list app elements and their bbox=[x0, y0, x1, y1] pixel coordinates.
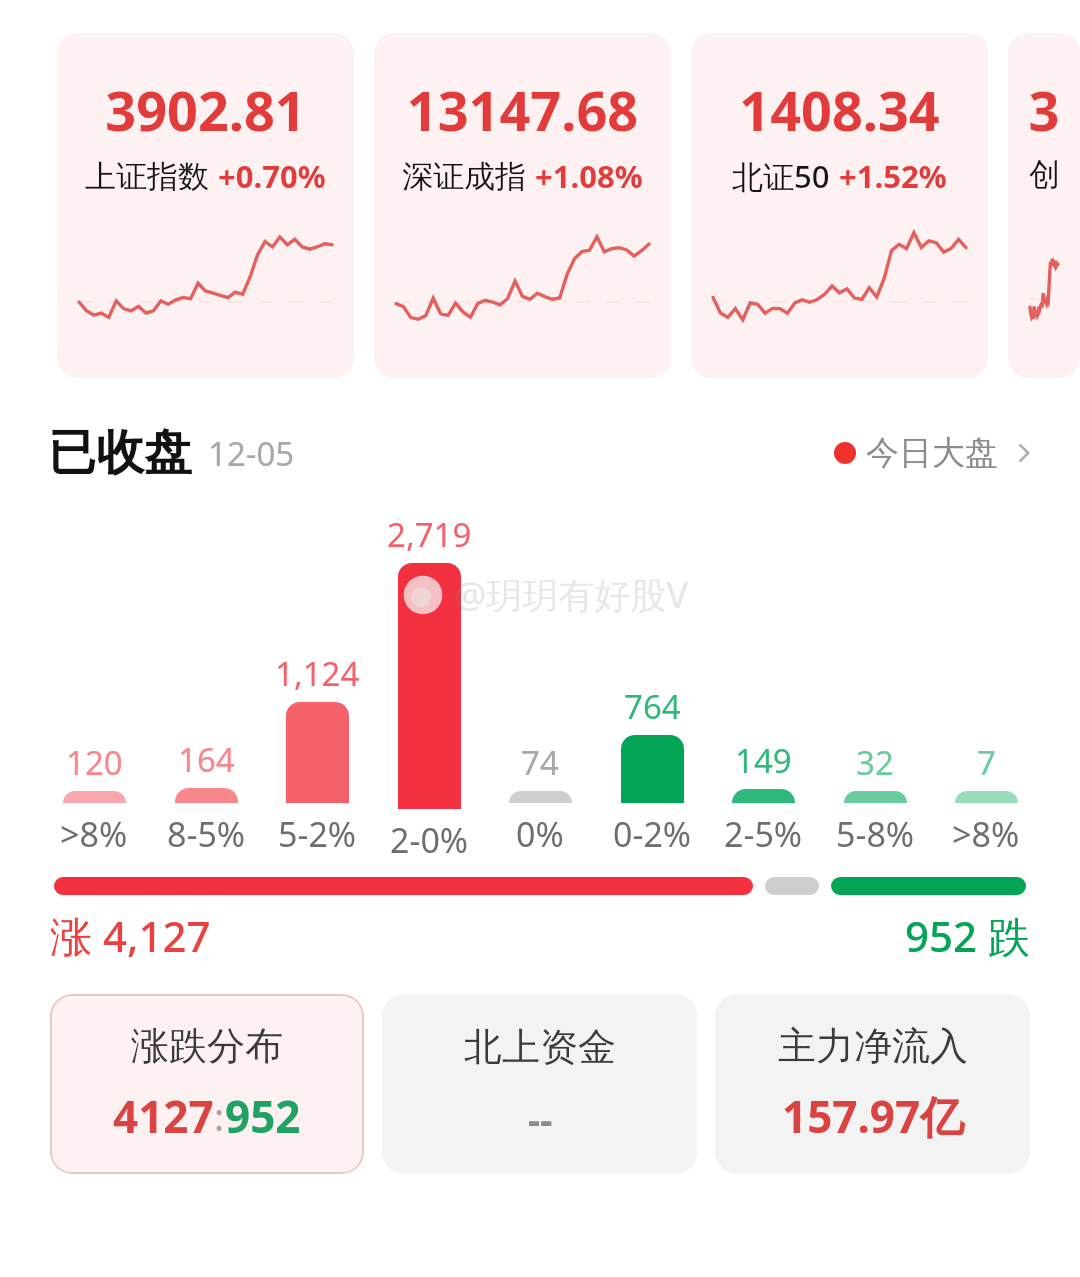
button[interactable]: 北上资金 bbox=[382, 994, 697, 1174]
button[interactable]: 149 bbox=[713, 738, 813, 857]
staticText: 0% bbox=[516, 811, 564, 857]
staticText: 5-2% bbox=[278, 811, 357, 857]
button[interactable]: 120 bbox=[44, 740, 144, 857]
staticText: 深证成指 bbox=[402, 157, 526, 196]
staticText: 3902.81 bbox=[57, 73, 354, 147]
staticText: : bbox=[214, 1090, 225, 1142]
button[interactable]: 1408.34 bbox=[691, 33, 988, 378]
button[interactable]: 32 bbox=[825, 740, 925, 857]
button[interactable]: 7 bbox=[936, 740, 1036, 857]
staticText: >8% bbox=[60, 811, 128, 857]
button[interactable]: 2,719 bbox=[379, 512, 479, 857]
staticText: 7 bbox=[977, 740, 996, 785]
staticText: 北上资金 bbox=[464, 1023, 616, 1071]
staticText: 5-8% bbox=[836, 811, 915, 857]
staticText: 主力净流入 bbox=[778, 1022, 968, 1070]
button[interactable]: 764 bbox=[602, 684, 702, 857]
staticText: 32 bbox=[856, 740, 894, 785]
staticText: 2-5% bbox=[724, 811, 803, 857]
staticText: 创 bbox=[1029, 155, 1060, 194]
button[interactable]: 1,124 bbox=[267, 651, 367, 857]
staticText: 1408.34 bbox=[691, 73, 988, 147]
button[interactable]: 今日大盘 bbox=[834, 432, 1038, 474]
button[interactable]: 74 bbox=[490, 740, 590, 857]
button[interactable]: 13147.68 bbox=[374, 33, 671, 378]
staticText: +0.70% bbox=[218, 155, 326, 197]
staticText: 已收盘 bbox=[48, 423, 192, 483]
staticText: 0-2% bbox=[613, 811, 692, 857]
staticText: 12-05 bbox=[208, 431, 295, 476]
staticText: @玥玥有好股V bbox=[454, 570, 689, 619]
staticText: -- bbox=[528, 1093, 553, 1145]
staticText: 1,124 bbox=[275, 651, 360, 696]
staticText: 2,719 bbox=[387, 512, 472, 557]
button[interactable]: 3902.81 bbox=[57, 33, 354, 378]
staticText: 4127 bbox=[113, 1086, 214, 1146]
staticText: +1.52% bbox=[839, 155, 947, 197]
staticText: 74 bbox=[521, 740, 559, 785]
staticText: 149 bbox=[735, 738, 792, 783]
staticText: 764 bbox=[624, 684, 681, 729]
staticText: 164 bbox=[178, 737, 235, 782]
staticText: 8-5% bbox=[167, 811, 246, 857]
staticText: +1.08% bbox=[535, 155, 643, 197]
staticText: 涨 4,127 bbox=[50, 907, 211, 964]
staticText: 涨跌分布 bbox=[131, 1022, 283, 1070]
staticText: 952 跌 bbox=[905, 907, 1030, 964]
staticText: 952 bbox=[225, 1086, 301, 1146]
staticText: 13147.68 bbox=[374, 73, 671, 147]
staticText: 3 bbox=[1008, 73, 1080, 147]
button[interactable]: 164 bbox=[156, 737, 256, 857]
staticText: 今日大盘 bbox=[866, 432, 998, 474]
staticText: 120 bbox=[66, 740, 123, 785]
staticText: >8% bbox=[952, 811, 1020, 857]
staticText: 北证50 bbox=[732, 155, 830, 197]
button[interactable]: 3 bbox=[1008, 33, 1080, 378]
staticText: 157.97亿 bbox=[782, 1086, 965, 1146]
button[interactable]: 涨跌分布 bbox=[50, 994, 364, 1174]
staticText: 上证指数 bbox=[85, 157, 209, 196]
staticText: 2-0% bbox=[390, 817, 469, 857]
button[interactable]: 主力净流入 bbox=[715, 994, 1030, 1174]
